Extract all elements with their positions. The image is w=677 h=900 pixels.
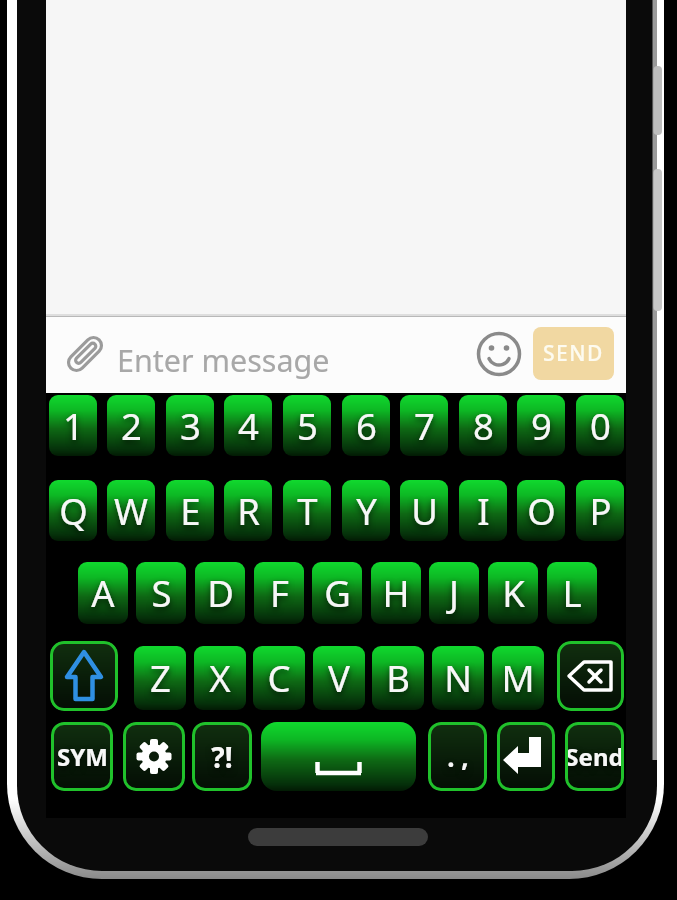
- button[interactable]: S: [136, 562, 186, 624]
- button[interactable]: 8: [459, 395, 507, 456]
- staticText: Q: [59, 486, 88, 536]
- button[interactable]: Y: [342, 480, 390, 541]
- staticText: 2: [121, 401, 142, 451]
- button[interactable]: 7: [400, 395, 448, 456]
- button[interactable]: K: [488, 562, 538, 624]
- staticText: 8: [473, 401, 494, 451]
- button[interactable]: [261, 722, 416, 791]
- button[interactable]: 3: [166, 395, 214, 456]
- staticText: Y: [356, 486, 377, 536]
- button[interactable]: 4: [224, 395, 272, 456]
- button[interactable]: 0: [576, 395, 624, 456]
- staticText: . ,: [447, 739, 469, 774]
- button[interactable]: G: [312, 562, 362, 624]
- button[interactable]: I: [459, 480, 507, 541]
- staticText: 5: [297, 401, 318, 451]
- staticText: T: [297, 486, 318, 536]
- button[interactable]: [50, 641, 118, 711]
- staticText: R: [237, 486, 260, 536]
- staticText: 1: [63, 401, 84, 451]
- button[interactable]: O: [517, 480, 565, 541]
- button[interactable]: N: [432, 646, 484, 710]
- button[interactable]: R: [224, 480, 272, 541]
- button[interactable]: 6: [342, 395, 390, 456]
- button[interactable]: C: [253, 646, 305, 710]
- staticText: N: [444, 653, 472, 703]
- staticText: X: [209, 653, 231, 703]
- button[interactable]: 1: [49, 395, 97, 456]
- staticText: 4: [238, 401, 259, 451]
- button[interactable]: 2: [107, 395, 155, 456]
- staticText: G: [324, 568, 351, 618]
- staticText: V: [328, 653, 350, 703]
- staticText: D: [207, 568, 234, 618]
- staticText: C: [267, 653, 291, 703]
- staticText: O: [527, 486, 556, 536]
- button[interactable]: V: [313, 646, 365, 710]
- button[interactable]: E: [166, 480, 214, 541]
- staticText: L: [562, 568, 582, 618]
- button[interactable]: M: [492, 646, 544, 710]
- staticText: K: [502, 568, 525, 618]
- staticText: 6: [356, 401, 377, 451]
- button[interactable]: X: [194, 646, 246, 710]
- staticText: J: [449, 568, 459, 618]
- button[interactable]: SYM: [51, 722, 113, 791]
- staticText: I: [477, 486, 490, 536]
- button[interactable]: J: [429, 562, 479, 624]
- button[interactable]: F: [254, 562, 304, 624]
- button[interactable]: 5: [283, 395, 331, 456]
- button[interactable]: [123, 722, 185, 791]
- button[interactable]: SEND: [533, 327, 614, 380]
- staticText: F: [270, 568, 289, 618]
- button[interactable]: U: [400, 480, 448, 541]
- button[interactable]: Q: [49, 480, 97, 541]
- button[interactable]: A: [78, 562, 128, 624]
- staticText: H: [382, 568, 410, 618]
- button[interactable]: B: [372, 646, 424, 710]
- staticText: 3: [180, 401, 201, 451]
- staticText: U: [411, 486, 438, 536]
- staticText: P: [589, 486, 612, 536]
- button[interactable]: L: [547, 562, 597, 624]
- button[interactable]: P: [576, 480, 624, 541]
- staticText: Enter message: [117, 339, 330, 381]
- staticText: ?!: [211, 738, 233, 776]
- button[interactable]: 9: [517, 395, 565, 456]
- button[interactable]: Send: [565, 722, 624, 791]
- button[interactable]: W: [107, 480, 155, 541]
- staticText: 0: [590, 401, 611, 451]
- button[interactable]: T: [283, 480, 331, 541]
- staticText: A: [91, 568, 115, 618]
- button[interactable]: [557, 641, 624, 711]
- staticText: S: [151, 568, 172, 618]
- button[interactable]: Z: [134, 646, 186, 710]
- staticText: B: [386, 653, 410, 703]
- button[interactable]: ?!: [192, 722, 252, 791]
- button[interactable]: . ,: [428, 722, 487, 791]
- staticText: 7: [414, 401, 435, 451]
- staticText: Send: [565, 740, 624, 773]
- staticText: W: [114, 486, 148, 536]
- staticText: SYM: [57, 740, 108, 773]
- button[interactable]: H: [371, 562, 421, 624]
- staticText: Z: [150, 653, 171, 703]
- button[interactable]: D: [195, 562, 245, 624]
- staticText: SEND: [543, 339, 604, 368]
- staticText: 9: [531, 401, 552, 451]
- staticText: M: [501, 653, 535, 703]
- staticText: E: [180, 486, 201, 536]
- button[interactable]: [497, 722, 555, 791]
